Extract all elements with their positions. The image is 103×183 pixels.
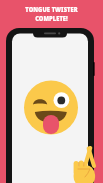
staticText: TONGUE TWISTER COMPLETE! — [25, 5, 78, 23]
